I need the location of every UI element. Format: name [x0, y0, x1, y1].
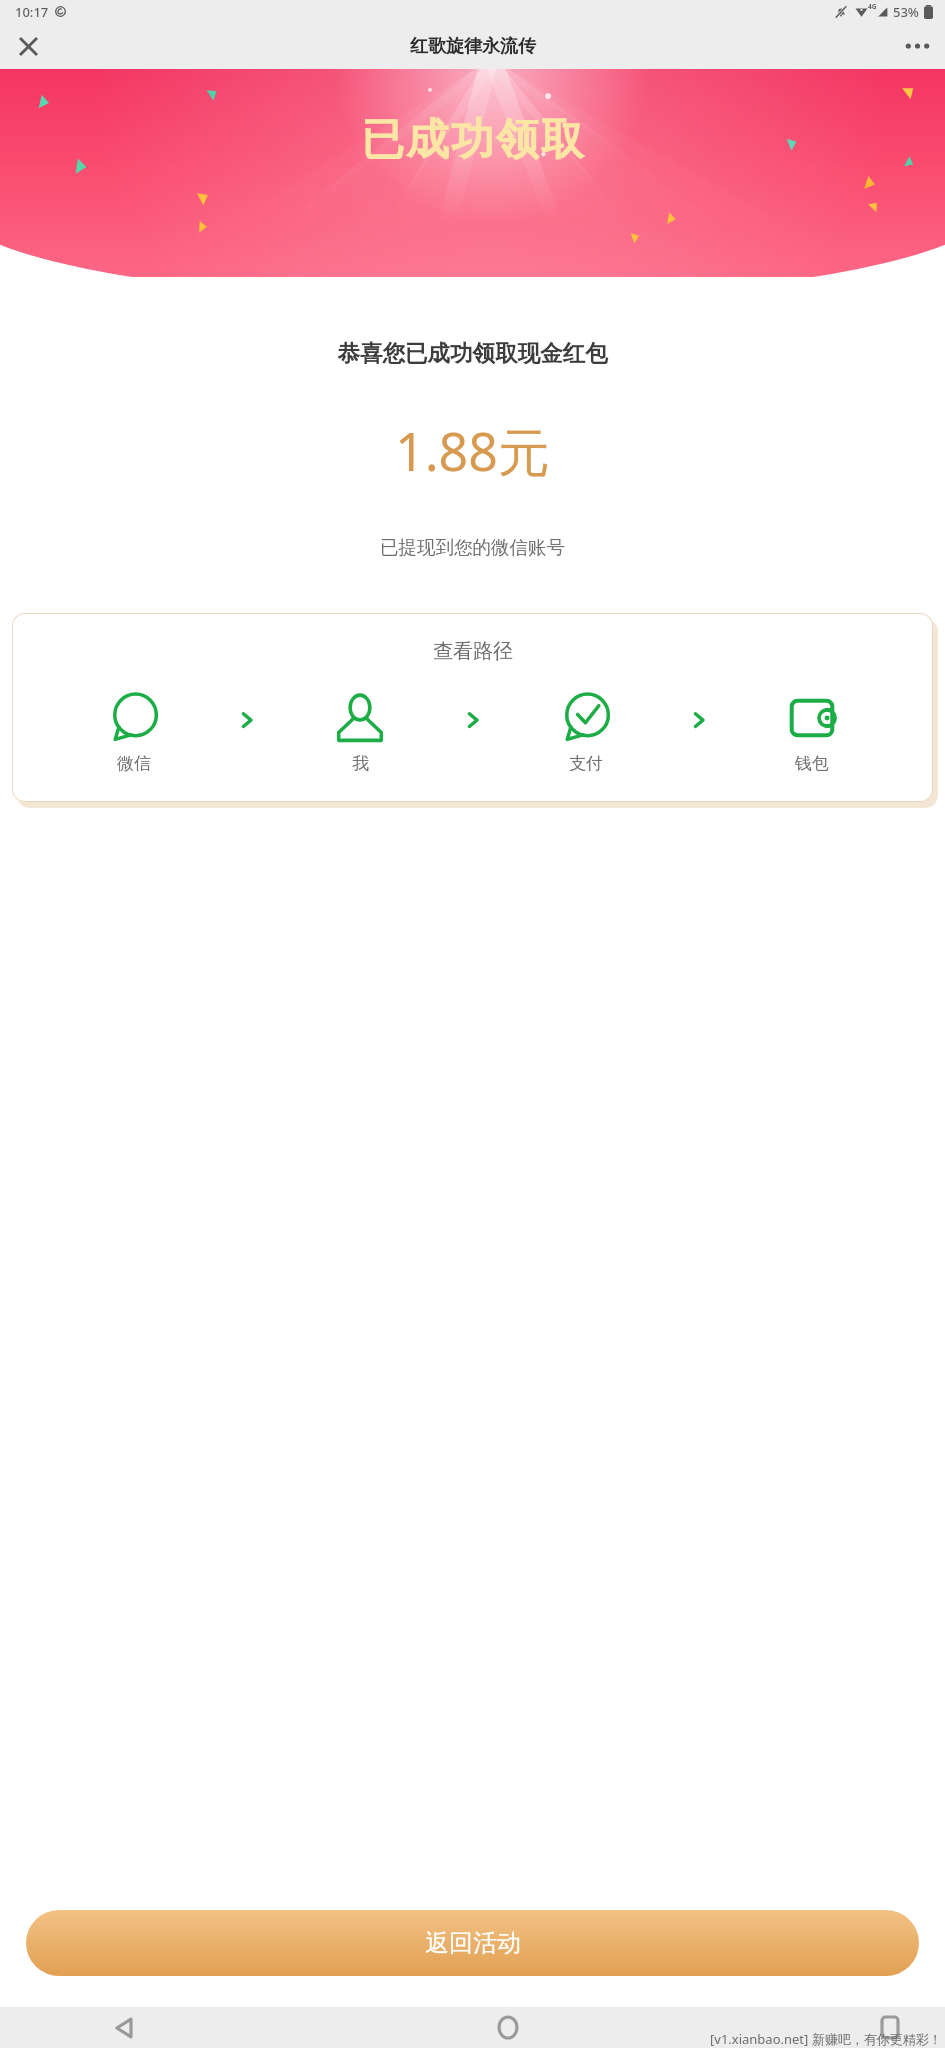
button[interactable]: 支付	[483, 692, 689, 774]
staticText: 4G	[868, 2, 877, 11]
staticText: 10:17	[15, 3, 49, 21]
button[interactable]: Home	[483, 2007, 533, 2048]
button[interactable]: 我	[257, 692, 463, 774]
button[interactable]: 钱包	[709, 692, 915, 774]
staticText: 恭喜您已成功领取现金红包	[0, 339, 945, 367]
button[interactable]: Back	[100, 2007, 150, 2048]
button[interactable]: 微信	[30, 692, 237, 774]
staticText: 返回活动	[425, 1928, 521, 1958]
staticText: 支付	[569, 753, 603, 774]
button[interactable]: Close	[5, 23, 51, 69]
button[interactable]: Recent apps	[865, 2007, 915, 2048]
staticText: 我	[352, 753, 369, 774]
staticText: 微信	[117, 753, 151, 774]
button[interactable]: More options	[894, 23, 940, 69]
staticText: [v1.xianbao.net] 新赚吧，有你更精彩！	[710, 2030, 942, 2048]
staticText: 1.88元	[0, 415, 945, 486]
button[interactable]: 返回活动	[26, 1910, 919, 1976]
staticText: 已提现到您的微信账号	[0, 536, 945, 559]
staticText: 53%	[893, 3, 919, 21]
staticText: 已成功领取	[360, 113, 585, 167]
staticText: 查看路径	[433, 639, 513, 664]
staticText: 红歌旋律永流传	[410, 35, 536, 58]
button[interactable]: 查看路径	[12, 613, 933, 802]
staticText: 钱包	[795, 753, 829, 774]
